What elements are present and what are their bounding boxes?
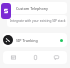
button[interactable]: Messages bbox=[46, 51, 67, 64]
button[interactable]: Dashboard bbox=[3, 51, 24, 64]
button[interactable]: Custom Telephony bbox=[3, 2, 67, 14]
staticText: SIP Trunking bbox=[16, 38, 38, 43]
staticText: Integrate with your existing SIP stack bbox=[10, 19, 66, 23]
button[interactable]: Telephony app icon bbox=[1, 3, 11, 19]
button[interactable]: Devices bbox=[25, 51, 46, 64]
button[interactable]: SIP Trunking bbox=[3, 33, 67, 47]
staticText: Custom Telephony bbox=[16, 6, 48, 11]
button[interactable]: Integrate with your existing SIP stack bbox=[7, 15, 67, 27]
